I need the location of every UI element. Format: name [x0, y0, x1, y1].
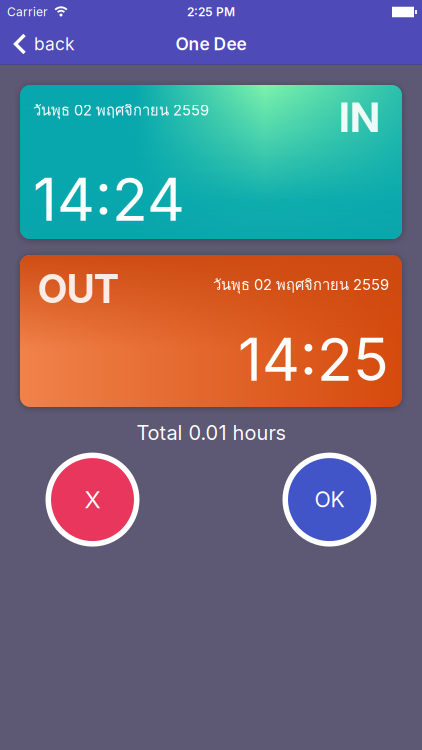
- staticText: 2:25 PM: [187, 5, 235, 19]
- button[interactable]: OK: [282, 453, 376, 547]
- staticText: Carrier: [7, 5, 48, 19]
- staticText: OUT: [38, 266, 119, 312]
- staticText: วันพุธ 02 พฤศจิกายน 2559: [213, 273, 389, 296]
- staticText: One Dee: [175, 34, 246, 54]
- staticText: X: [84, 485, 100, 514]
- staticText: 14:24: [33, 165, 185, 234]
- button[interactable]: X: [45, 453, 139, 547]
- staticText: back: [34, 34, 75, 54]
- staticText: Total 0.01 hours: [136, 421, 285, 445]
- button[interactable]: back: [0, 27, 75, 60]
- staticText: OK: [314, 487, 344, 512]
- staticText: 14:25: [238, 325, 389, 394]
- staticText: วันพุธ 02 พฤศจิกายน 2559: [33, 99, 209, 122]
- staticText: IN: [339, 93, 380, 142]
